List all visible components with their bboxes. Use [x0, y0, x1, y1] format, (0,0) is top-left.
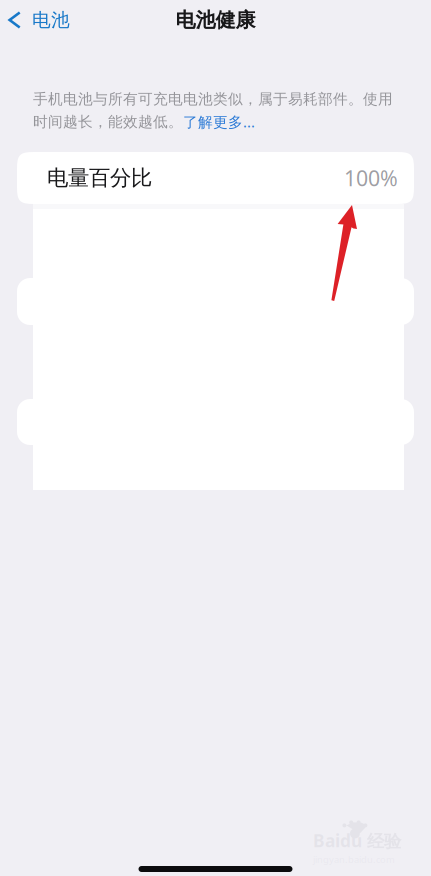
staticText: Baidu 经验 [313, 829, 401, 852]
staticText: 100% [344, 164, 398, 192]
staticText: 手机电池与所有可充电电池类似，属于易耗部件。使用 [33, 90, 393, 108]
button[interactable]: 电量百分比 [17, 152, 414, 204]
staticText: 电池健康 [175, 8, 255, 32]
button[interactable]: 了解更多... [183, 112, 255, 131]
staticText: 电池 [32, 8, 70, 31]
staticText: 时间越长，能效越低。 [33, 113, 183, 131]
staticText: 电量百分比 [47, 165, 152, 191]
staticText: 了解更多... [183, 112, 255, 131]
button[interactable]: 电池 [0, 3, 78, 36]
